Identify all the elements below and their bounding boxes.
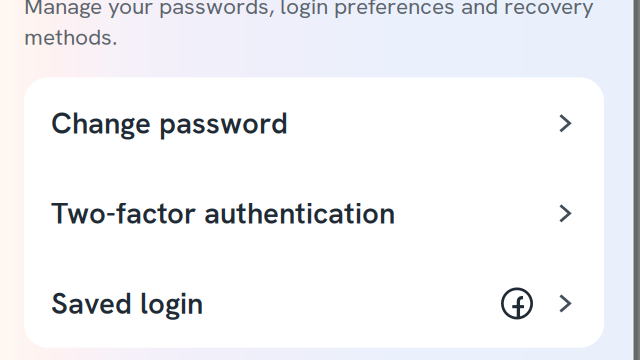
staticText: Saved login [51, 284, 203, 322]
button[interactable]: Saved login [24, 258, 604, 348]
button[interactable]: Two-factor authentication [24, 167, 604, 258]
staticText: Change password [51, 104, 288, 142]
button[interactable]: Change password [24, 77, 604, 167]
staticText: Two-factor authentication [51, 194, 395, 232]
staticText: methods. [24, 22, 117, 52]
staticText: Manage your passwords, login preferences… [24, 0, 594, 21]
